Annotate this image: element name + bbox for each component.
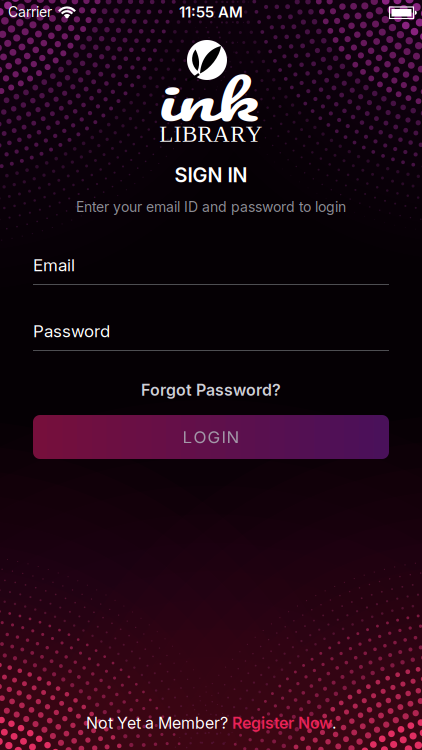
staticText: Register Now [232,714,332,732]
staticText: N [226,427,239,447]
staticText: R [197,121,212,147]
button[interactable]: Email [33,255,389,285]
staticText: Y [246,121,263,147]
staticText: Forgot Password? [141,381,281,399]
staticText: ink [176,56,239,144]
staticText: I [174,121,182,147]
staticText: I [221,427,225,447]
staticText: Carrier [8,4,52,20]
staticText: 11:55 AM [179,3,243,21]
staticText: SIGN IN [174,163,247,187]
staticText: O [193,427,206,447]
staticText: Password [33,321,110,341]
staticText: L [182,427,192,447]
button[interactable]: Forgot Password? [133,377,289,403]
staticText: B [182,121,197,147]
staticText: Not Yet a Member? [86,714,232,732]
staticText: G [207,427,220,447]
button[interactable]: Password [33,321,389,351]
staticText: R [230,121,245,147]
staticText: Enter your email ID and password to logi… [76,199,346,215]
staticText: L [159,121,173,147]
staticText: Email [33,255,75,275]
button[interactable]: Register Now [232,714,332,732]
button[interactable]: L [33,415,389,459]
staticText: A [213,121,230,147]
staticText: . [332,714,336,732]
